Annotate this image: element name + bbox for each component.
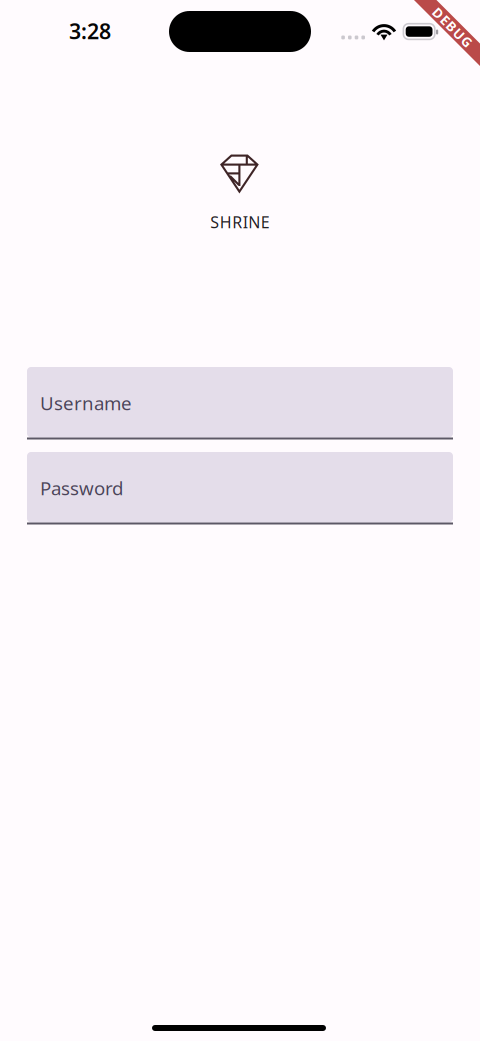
button[interactable]: Password [27, 452, 453, 524]
staticText: Username [40, 391, 132, 415]
staticText: 3:28 [69, 17, 111, 45]
staticText: H [220, 211, 232, 233]
staticText: G [468, 18, 478, 36]
staticText: R [232, 211, 242, 233]
staticText: B [447, 18, 456, 36]
staticText: U [457, 18, 467, 36]
button[interactable]: Username [27, 367, 453, 439]
staticText: E [261, 211, 270, 233]
staticText: I [243, 211, 248, 233]
staticText: N [248, 211, 260, 233]
staticText: D [427, 18, 437, 36]
staticText: E [438, 18, 445, 36]
staticText: Password [40, 476, 123, 500]
staticText: S [210, 211, 219, 233]
